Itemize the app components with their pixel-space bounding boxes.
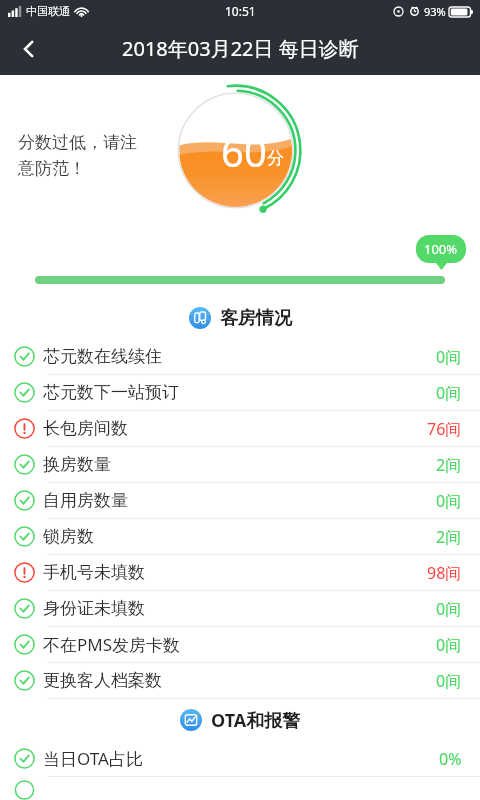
staticText: 10:51 (225, 3, 256, 19)
staticText: 2间 (436, 454, 462, 476)
staticText: 自用房数量 (43, 490, 128, 511)
staticText: 0间 (436, 598, 462, 620)
button[interactable]: 身份证未填数 (0, 590, 480, 626)
button[interactable]: 芯元数在线续住 (0, 339, 480, 374)
staticText: 芯元数下一站预订 (43, 382, 179, 403)
staticText: 0% (439, 748, 462, 770)
staticText: 换房数量 (43, 454, 111, 475)
staticText: 锁房数 (43, 526, 94, 547)
staticText: 2018年03月22日 每日诊断 (122, 35, 359, 62)
staticText: 长包房间数 (43, 418, 128, 439)
staticText: 93% (424, 4, 446, 19)
staticText: OTA和报警 (211, 708, 301, 733)
staticText: 60 (221, 124, 267, 178)
staticText: 分 (267, 148, 284, 169)
button[interactable]: 更换客人档案数 (0, 662, 480, 698)
button[interactable]: Back (0, 22, 58, 75)
button[interactable]: 换房数量 (0, 446, 480, 482)
staticText: 100% (424, 240, 458, 258)
staticText: 0间 (436, 382, 462, 404)
staticText: 客房情况 (220, 307, 292, 330)
button[interactable]: 不在PMS发房卡数 (0, 626, 480, 662)
button[interactable]: 当日OTA占比 (0, 741, 480, 776)
staticText: 当日OTA占比 (43, 747, 143, 770)
staticText: 不在PMS发房卡数 (43, 633, 181, 656)
staticText: 更换客人档案数 (43, 670, 162, 691)
button[interactable]: 芯元数下一站预订 (0, 374, 480, 410)
staticText: 身份证未填数 (43, 598, 145, 619)
staticText: 0间 (436, 346, 462, 368)
staticText: 中国联通 (26, 4, 70, 18)
staticText: 98间 (427, 562, 462, 584)
staticText: 0间 (436, 670, 462, 692)
staticText: 手机号未填数 (43, 562, 145, 583)
staticText: 意防范！ (18, 158, 86, 179)
button[interactable]: 自用房数量 (0, 482, 480, 518)
staticText: 0间 (436, 634, 462, 656)
staticText: 分数过低，请注 (18, 132, 137, 153)
staticText: 2间 (436, 526, 462, 548)
staticText: 芯元数在线续住 (43, 346, 162, 367)
staticText: 76间 (427, 418, 462, 440)
button[interactable]: 长包房间数 (0, 410, 480, 446)
button[interactable]: 手机号未填数 (0, 554, 480, 590)
staticText: 0间 (436, 490, 462, 512)
button[interactable]: 锁房数 (0, 518, 480, 554)
